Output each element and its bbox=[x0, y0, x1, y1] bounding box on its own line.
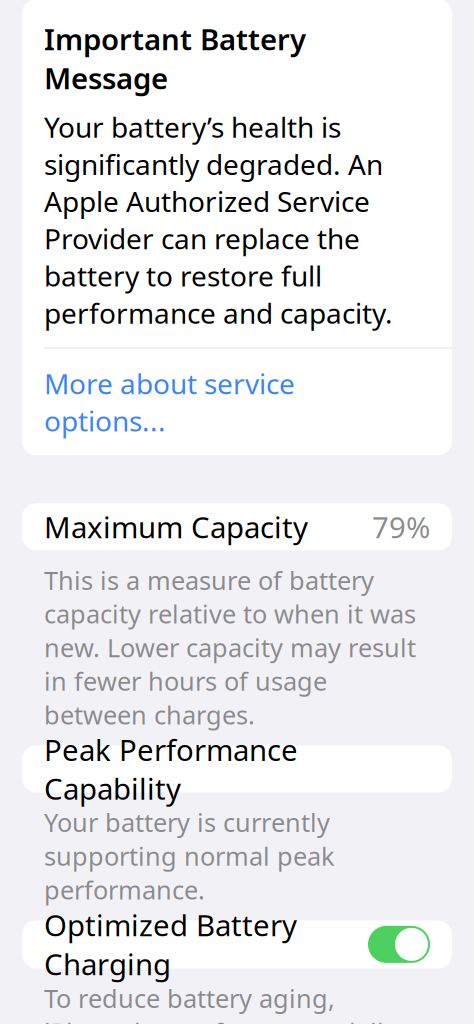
staticText: Optimized Battery Charging bbox=[44, 905, 297, 983]
staticText: Maximum Capacity bbox=[44, 507, 308, 546]
staticText: Peak Performance Capability bbox=[44, 730, 298, 808]
button[interactable]: More about service options... bbox=[22, 349, 452, 455]
staticText: Important Battery Message bbox=[44, 19, 306, 97]
staticText: This is a measure of battery capacity re… bbox=[44, 563, 416, 731]
staticText: To reduce battery aging, iPhone learns f… bbox=[44, 981, 408, 1024]
staticText: More about service options... bbox=[44, 365, 295, 439]
staticText: 79% bbox=[372, 507, 430, 546]
staticText: Your battery’s health is significantly d… bbox=[44, 108, 393, 331]
staticText: Your battery is currently supporting nor… bbox=[44, 805, 335, 906]
button[interactable]: Optimized Battery Charging bbox=[368, 926, 430, 963]
button[interactable]: Peak Performance Capability bbox=[0, 745, 474, 792]
